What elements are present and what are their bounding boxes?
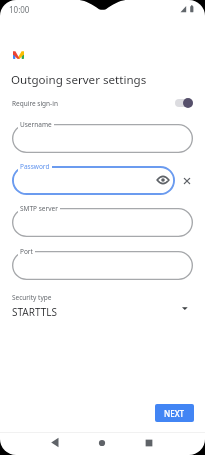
staticText: Require sign-in — [12, 99, 58, 108]
staticText: STARTTLS — [12, 305, 58, 319]
button[interactable]: Clear — [181, 175, 193, 187]
staticText: Security type — [12, 293, 52, 302]
staticText: Password — [20, 162, 50, 171]
staticText: 10:00 — [9, 4, 30, 15]
button[interactable]: Home — [96, 437, 108, 449]
button[interactable]: Recent apps — [143, 437, 155, 449]
staticText: Username — [20, 120, 52, 129]
button[interactable]: Username — [12, 124, 193, 153]
staticText: NEXT — [164, 408, 185, 419]
button[interactable]: Password — [12, 166, 175, 195]
button[interactable]: Require sign-in — [0, 95, 205, 111]
staticText: SMTP server — [20, 204, 58, 213]
button[interactable]: Back — [48, 436, 62, 449]
staticText: Outgoing server settings — [11, 72, 147, 88]
button[interactable]: Port — [12, 251, 193, 280]
staticText: Port — [20, 247, 33, 256]
button[interactable]: NEXT — [155, 404, 194, 422]
button[interactable]: SMTP server — [12, 208, 193, 237]
button[interactable]: Show password — [156, 173, 170, 187]
button[interactable]: Security type — [0, 292, 205, 320]
